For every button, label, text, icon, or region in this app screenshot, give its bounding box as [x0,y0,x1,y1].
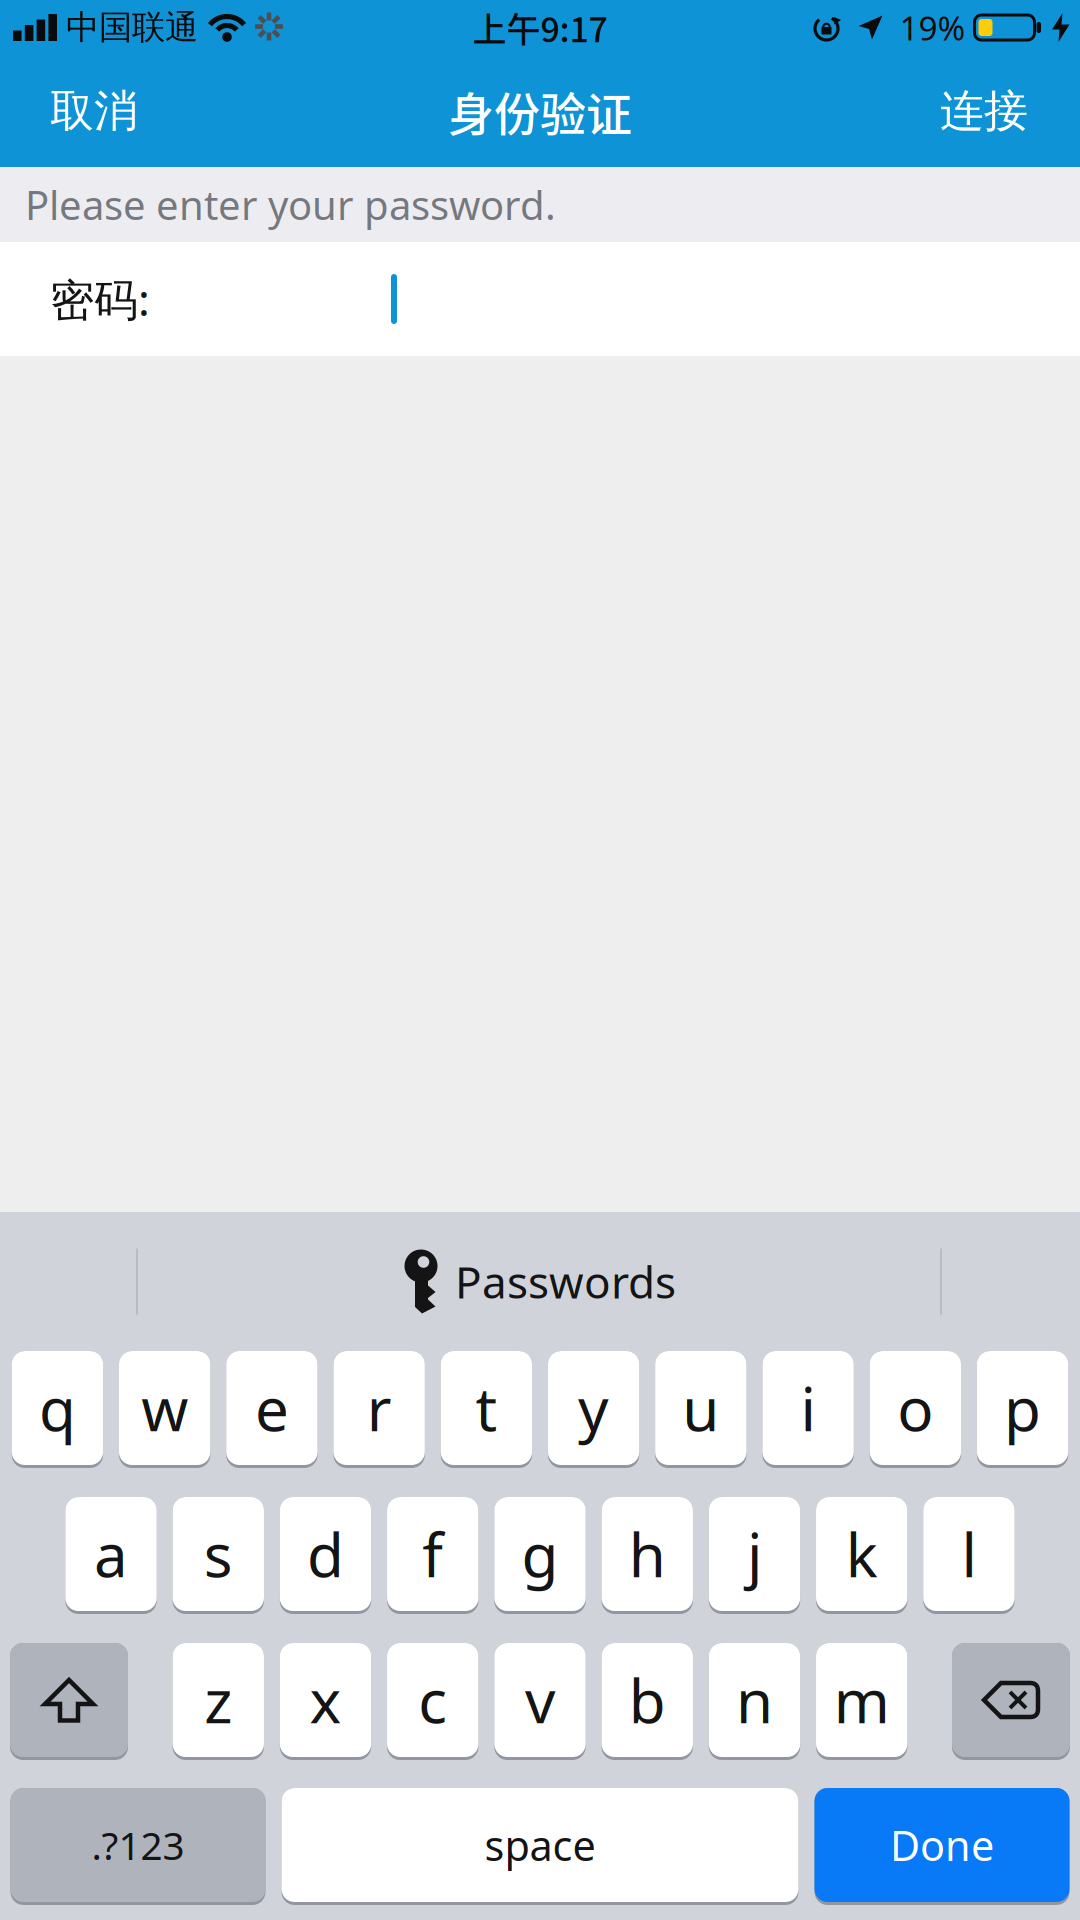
button[interactable]: e [226,1351,318,1468]
button[interactable]: b [601,1643,693,1760]
button[interactable]: x [280,1643,371,1760]
staticText: u [682,1368,719,1448]
staticText: p [1004,1368,1041,1448]
button[interactable]: 取消 [50,84,138,138]
button[interactable]: l [923,1497,1015,1614]
button[interactable]: j [709,1497,800,1614]
staticText: 上午9:17 [472,3,607,52]
button[interactable]: space [281,1788,798,1905]
button[interactable]: c [387,1643,478,1760]
button[interactable]: Delete [952,1643,1070,1760]
staticText: a [94,1514,128,1594]
button[interactable]: y [548,1351,639,1468]
button[interactable]: r [333,1351,425,1468]
staticText: 中国联通 [66,7,198,48]
button[interactable]: k [816,1497,907,1614]
staticText: t [475,1368,497,1448]
button[interactable]: s [173,1497,264,1614]
staticText: i [801,1368,816,1448]
staticText: .?123 [91,1819,184,1871]
staticText: b [629,1660,666,1740]
button[interactable]: Shift [10,1643,128,1760]
staticText: 连接 [940,84,1028,138]
staticText: 密码: [50,270,150,328]
staticText: Passwords [455,1252,676,1311]
button[interactable]: u [655,1351,747,1468]
staticText: v [525,1660,555,1740]
staticText: d [307,1514,344,1594]
button[interactable]: h [601,1497,693,1614]
staticText: c [418,1660,447,1740]
button[interactable]: .?123 [10,1788,265,1905]
staticText: z [204,1660,232,1740]
staticText: g [521,1514,558,1594]
button[interactable]: p [977,1351,1068,1468]
staticText: e [255,1368,289,1448]
staticText: Done [890,1818,994,1872]
staticText: m [834,1660,890,1740]
button[interactable]: o [870,1351,961,1468]
staticText: space [484,1818,595,1872]
staticText: 取消 [50,84,138,138]
button[interactable]: w [119,1351,210,1468]
staticText: n [736,1660,773,1740]
button[interactable]: Passwords [404,1249,676,1313]
button[interactable]: v [494,1643,586,1760]
staticText: 19% [899,5,965,50]
button[interactable]: Done [814,1788,1069,1905]
staticText: f [422,1514,443,1594]
button[interactable]: f [387,1497,478,1614]
staticText: r [367,1368,392,1448]
staticText: x [309,1660,341,1740]
staticText: o [897,1368,933,1448]
button[interactable]: t [441,1351,532,1468]
staticText: w [141,1368,188,1448]
button[interactable]: a [65,1497,157,1614]
staticText: 身份验证 [448,78,632,144]
staticText: h [629,1514,666,1594]
button[interactable]: z [173,1643,264,1760]
button[interactable]: 密码 [0,242,1080,356]
staticText: y [578,1368,609,1448]
button[interactable]: n [709,1643,800,1760]
button[interactable]: 连接 [940,84,1028,138]
staticText: l [961,1514,976,1594]
staticText: Please enter your password. [25,178,556,231]
button[interactable]: i [762,1351,854,1468]
staticText: q [39,1368,76,1448]
staticText: s [204,1514,233,1594]
button[interactable]: d [280,1497,371,1614]
button[interactable]: m [816,1643,907,1760]
button[interactable]: g [494,1497,586,1614]
staticText: k [846,1514,878,1594]
button[interactable]: q [12,1351,103,1468]
staticText: j [747,1514,762,1594]
